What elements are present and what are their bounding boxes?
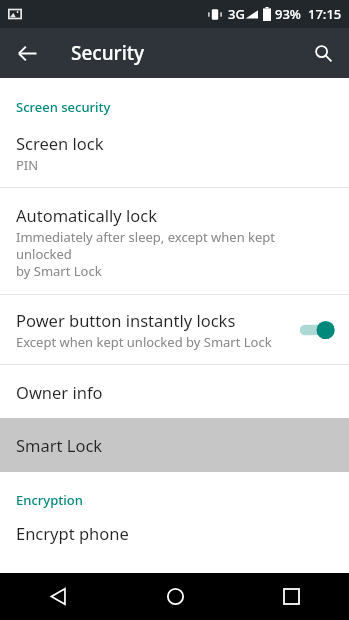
staticText: 17:15 [308, 5, 342, 23]
staticText: Automatically lock [16, 204, 157, 226]
button[interactable]: Screen lock [0, 118, 349, 187]
button[interactable]: Recent apps [233, 573, 349, 620]
staticText: 3G [228, 5, 245, 23]
staticText: Security [71, 40, 145, 66]
staticText: Screen security [16, 98, 111, 116]
button[interactable]: Back [0, 573, 117, 620]
staticText: PIN [16, 156, 39, 174]
button[interactable]: Back [7, 33, 47, 73]
staticText: Owner info [16, 381, 103, 403]
button[interactable]: Home [117, 573, 233, 620]
button[interactable]: Smart Lock [0, 418, 349, 472]
staticText: Smart Lock [16, 434, 103, 456]
staticText: Power button instantly locks [16, 309, 236, 331]
staticText: Screen lock [16, 132, 104, 154]
button[interactable]: Power button instantly locks [0, 295, 349, 364]
staticText: Encryption [16, 491, 83, 509]
button[interactable]: Search [303, 33, 343, 73]
staticText: Encrypt phone [16, 522, 129, 544]
staticText: Immediately after sleep, except when kep… [16, 228, 333, 280]
staticText: 93% [275, 5, 301, 23]
button[interactable]: Owner info [0, 365, 349, 418]
button[interactable]: Automatically lock [0, 188, 349, 294]
button[interactable]: Encrypt phone [0, 511, 349, 555]
staticText: Except when kept unlocked by Smart Lock [16, 333, 272, 351]
